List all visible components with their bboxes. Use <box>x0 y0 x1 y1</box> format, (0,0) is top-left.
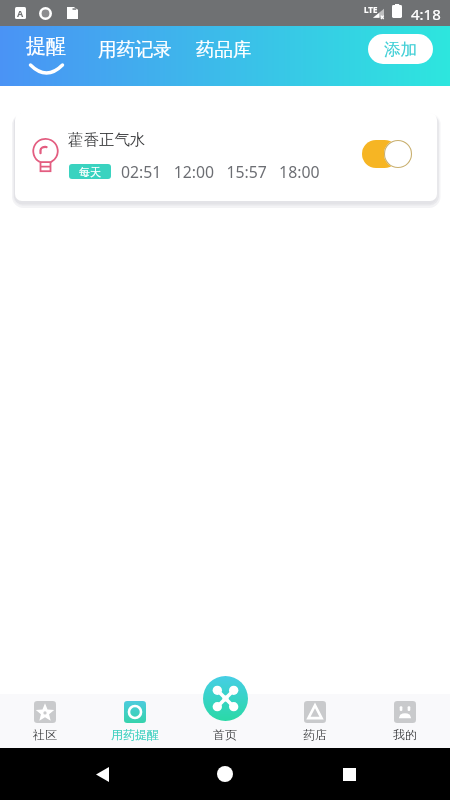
staticText: LTE <box>364 4 378 15</box>
button[interactable]: 首页 <box>180 694 270 748</box>
staticText: 藿香正气水 <box>68 130 146 150</box>
staticText: 02:51 12:00 15:57 18:00 <box>121 161 320 183</box>
staticText: 用药记录 <box>98 38 172 61</box>
staticText: 用药提醒 <box>111 727 159 742</box>
staticText: 药品库 <box>196 38 252 61</box>
staticText: 4:18 <box>411 4 441 24</box>
staticText: 提醒 <box>26 34 66 59</box>
button[interactable]: 添加 <box>368 34 433 64</box>
button[interactable]: Home <box>203 676 248 721</box>
button[interactable]: 药品库 <box>192 31 256 68</box>
button[interactable]: 药店 <box>270 694 360 748</box>
staticText: 每天 <box>79 165 101 179</box>
button[interactable]: 用药记录 <box>94 31 176 68</box>
button[interactable]: 我的 <box>360 694 450 748</box>
button[interactable]: 用药提醒 <box>90 694 180 748</box>
staticText: A <box>17 7 24 19</box>
button[interactable]: Toggle reminder <box>362 140 412 168</box>
button[interactable]: Recent apps <box>327 752 371 796</box>
button[interactable]: 社区 <box>0 694 90 748</box>
staticText: 我的 <box>393 727 417 742</box>
button[interactable]: 藿香正气水 <box>15 113 437 201</box>
staticText: 社区 <box>33 727 57 742</box>
staticText: 添加 <box>384 39 417 60</box>
staticText: 药店 <box>303 727 327 742</box>
button[interactable]: 提醒 <box>18 29 74 78</box>
button[interactable]: Back <box>80 752 124 796</box>
staticText: 首页 <box>213 727 237 742</box>
button[interactable]: Home <box>203 752 247 796</box>
